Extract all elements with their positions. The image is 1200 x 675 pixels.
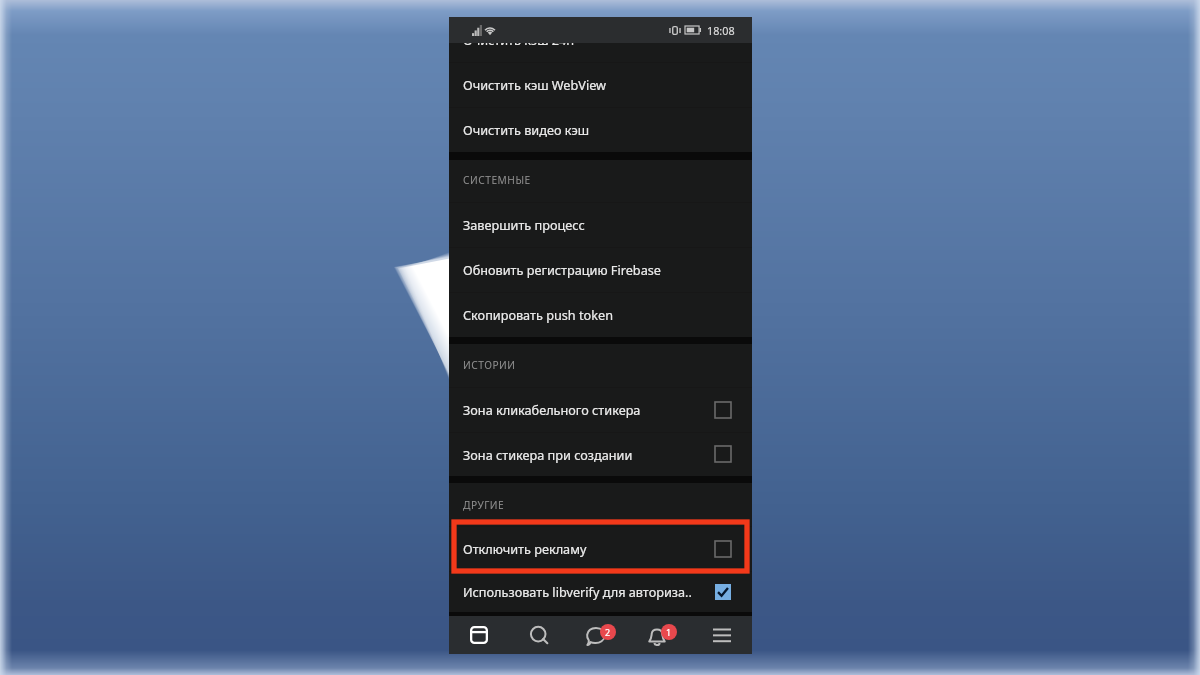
staticText: Использовать libverify для авториза.. [463, 583, 715, 600]
staticText: Очистить видео кэш [463, 121, 731, 138]
button[interactable]: Обновить регистрацию Firebase [449, 247, 752, 292]
button[interactable]: Очистить кэш WebView [449, 62, 752, 107]
staticText: Обновить регистрацию Firebase [463, 261, 731, 278]
button[interactable]: Зона кликабельного стикера [449, 387, 752, 432]
staticText: Зона стикера при создании [463, 446, 715, 463]
staticText: 2 [605, 626, 611, 638]
staticText: Отключить рекламу [463, 540, 715, 557]
button[interactable]: Зона стикера при создании [449, 432, 752, 476]
staticText: Зона кликабельного стикера [463, 401, 715, 418]
staticText: ДРУГИЕ [463, 498, 505, 512]
button[interactable]: Завершить процесс [449, 202, 752, 247]
button[interactable]: Отключить рекламу [449, 526, 752, 571]
staticText: ИСТОРИИ [463, 358, 516, 372]
staticText: 1 [666, 626, 672, 638]
staticText: Очистить кэш WebView [463, 76, 731, 93]
button[interactable]: ДРУГИЕ [449, 483, 752, 526]
button[interactable]: Скопировать push token [449, 292, 752, 337]
button[interactable]: Использовать libverify для авториза.. [449, 571, 752, 612]
button[interactable]: Messages [569, 616, 630, 654]
button[interactable]: СИСТЕМНЫЕ [449, 160, 752, 202]
button[interactable]: Очистить видео кэш [449, 107, 752, 152]
staticText: Завершить процесс [463, 216, 731, 233]
staticText: Очистить кэш 24h [463, 31, 575, 48]
staticText: Скопировать push token [463, 306, 731, 323]
button[interactable]: ИСТОРИИ [449, 344, 752, 387]
button[interactable]: Search [509, 616, 569, 654]
button[interactable]: Очистить кэш 24h [449, 43, 752, 62]
staticText: 18:08 [707, 23, 735, 38]
button[interactable]: Menu [691, 616, 752, 654]
button[interactable]: Notifications [630, 616, 691, 654]
staticText: СИСТЕМНЫЕ [463, 173, 531, 187]
button[interactable]: Feed [449, 616, 509, 654]
